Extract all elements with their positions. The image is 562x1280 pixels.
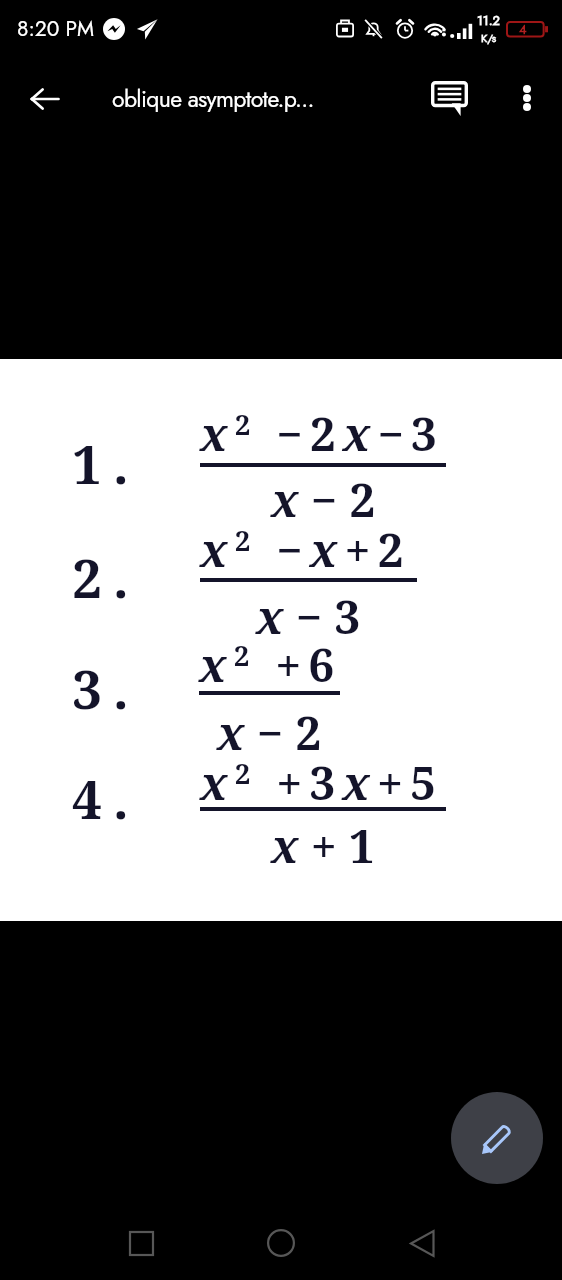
staticText: x+1 bbox=[271, 814, 387, 877]
staticText: x−3 bbox=[256, 585, 373, 648]
staticText: 8:20 PM bbox=[17, 14, 95, 44]
staticText: x2 +6 bbox=[199, 633, 342, 696]
staticText: oblique asymptote.p... bbox=[112, 82, 314, 115]
staticText: 1. bbox=[72, 427, 140, 499]
button[interactable]: Comments bbox=[420, 69, 478, 127]
staticText: 2. bbox=[72, 541, 140, 613]
button[interactable]: More options bbox=[501, 72, 553, 124]
button[interactable]: Edit bbox=[451, 1092, 543, 1184]
staticText: x2 +3x+5 bbox=[200, 751, 444, 814]
staticText: 4 bbox=[519, 20, 527, 39]
staticText: 4. bbox=[72, 762, 140, 834]
button[interactable]: Recent apps bbox=[110, 1212, 172, 1274]
button[interactable]: Home bbox=[250, 1212, 312, 1274]
staticText: K/s bbox=[481, 30, 497, 46]
staticText: 3. bbox=[72, 652, 140, 724]
staticText: x−2 bbox=[271, 468, 388, 531]
button[interactable]: Back bbox=[16, 70, 73, 127]
staticText: x2 −2x−3 bbox=[200, 402, 444, 465]
staticText: x−2 bbox=[217, 701, 334, 764]
button[interactable]: Back bbox=[391, 1212, 453, 1274]
staticText: x2 −x+2 bbox=[200, 518, 411, 581]
staticText: 11.2 bbox=[477, 11, 500, 30]
